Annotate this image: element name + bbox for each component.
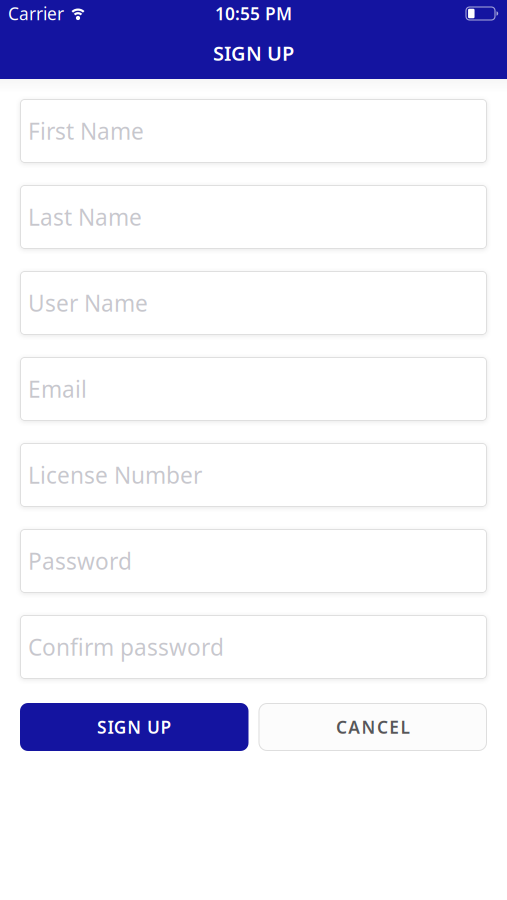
staticText: Email <box>28 374 87 404</box>
textField[interactable]: Email <box>20 374 487 404</box>
staticText: Confirm password <box>20 632 216 662</box>
staticText: Last Name <box>28 202 142 232</box>
staticText: First Name <box>20 116 136 146</box>
staticText: Email <box>20 374 79 404</box>
staticText: CANCEL <box>336 715 409 738</box>
staticText: Confirm password <box>28 632 224 662</box>
staticText: Carrier <box>8 2 64 25</box>
textField[interactable]: Last Name <box>20 202 487 232</box>
staticText: License Number <box>28 460 202 490</box>
textField[interactable]: Password <box>20 546 487 576</box>
staticText: User Name <box>20 288 140 318</box>
textField[interactable]: Confirm password <box>20 632 487 662</box>
staticText: Last Name <box>20 202 134 232</box>
textField[interactable]: License Number <box>20 460 487 490</box>
textField[interactable]: First Name <box>20 116 487 146</box>
staticText: Password <box>28 546 132 576</box>
staticText: SIGN UP <box>97 715 171 738</box>
textField[interactable]: User Name <box>20 288 487 318</box>
staticText: License Number <box>20 460 194 490</box>
staticText: 10:55 PM <box>215 2 292 25</box>
button[interactable]: CANCEL <box>258 703 487 751</box>
staticText: SIGN UP <box>213 40 294 66</box>
button[interactable]: SIGN UP <box>20 703 248 751</box>
staticText: Password <box>20 546 124 576</box>
staticText: First Name <box>28 116 144 146</box>
staticText: User Name <box>28 288 148 318</box>
